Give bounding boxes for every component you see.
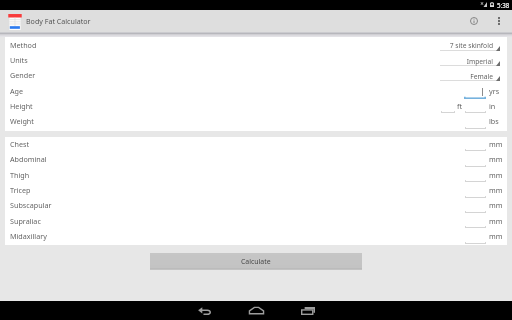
button[interactable] (5, 137, 507, 152)
staticText: Units (10, 55, 28, 65)
button[interactable] (5, 214, 507, 229)
staticText: Thigh (10, 170, 30, 180)
staticText: mm (489, 200, 503, 210)
staticText: Female (425, 72, 493, 81)
button[interactable]: Info (462, 10, 485, 33)
button[interactable] (5, 54, 507, 69)
staticText: mm (489, 231, 503, 241)
staticText: Imperial (425, 57, 493, 66)
button[interactable] (5, 69, 507, 84)
button[interactable] (5, 115, 507, 130)
button[interactable] (5, 84, 507, 99)
button[interactable] (5, 153, 507, 168)
staticText: Age (10, 86, 24, 96)
button[interactable]: More options (488, 10, 511, 33)
staticText: mm (489, 170, 503, 180)
button[interactable]: Calculate (150, 253, 362, 270)
staticText: in (489, 101, 496, 111)
staticText: lbs (489, 116, 499, 126)
staticText: Weight (10, 116, 34, 126)
button[interactable] (5, 199, 507, 214)
button[interactable] (5, 100, 507, 115)
staticText: Chest (10, 139, 30, 149)
staticText: Height (10, 101, 33, 111)
staticText: Gender (10, 70, 36, 80)
staticText: mm (489, 185, 503, 195)
button[interactable] (5, 184, 507, 199)
button[interactable] (5, 168, 507, 183)
staticText: Method (10, 40, 37, 50)
staticText: Subscapular (10, 200, 52, 210)
button[interactable]: Recents (288, 301, 329, 320)
staticText: mm (489, 216, 503, 226)
staticText: mm (489, 139, 503, 149)
button[interactable] (5, 38, 507, 53)
staticText: Midaxillary (10, 231, 47, 241)
staticText: Supraliac (10, 216, 41, 226)
staticText: Tricep (10, 185, 31, 195)
staticText: Calculate (241, 257, 271, 266)
staticText: yrs (489, 86, 500, 96)
staticText: mm (489, 154, 503, 164)
button[interactable] (5, 230, 507, 245)
staticText: Abdominal (10, 154, 47, 164)
button[interactable]: Back (184, 301, 225, 320)
staticText: ft (457, 101, 463, 111)
staticText: 5:38 (497, 1, 510, 9)
button[interactable]: Home (236, 301, 277, 320)
staticText: 7 site skinfold (425, 41, 493, 50)
staticText: Body Fat Calculator (26, 16, 91, 26)
